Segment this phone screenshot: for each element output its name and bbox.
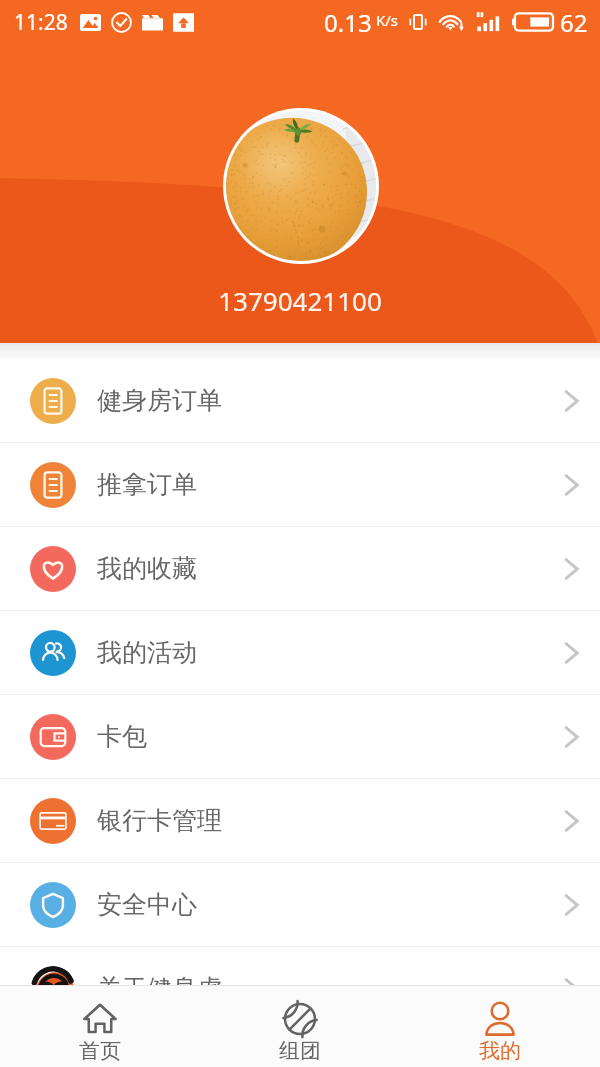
staticText: K/s bbox=[376, 10, 399, 30]
staticText: 62 bbox=[560, 6, 588, 39]
button[interactable]: 健身房订单 bbox=[0, 359, 600, 442]
staticText: 首页 bbox=[79, 1038, 121, 1064]
staticText: 我的活动 bbox=[97, 637, 197, 668]
button[interactable]: 关于健身虎 bbox=[0, 947, 600, 1030]
staticText: 银行卡管理 bbox=[97, 805, 222, 836]
button[interactable]: 安全中心 bbox=[0, 863, 600, 946]
button[interactable]: 银行卡管理 bbox=[0, 779, 600, 862]
button[interactable]: 首页 bbox=[0, 986, 200, 1067]
button[interactable]: 我的收藏 bbox=[0, 527, 600, 610]
staticText: 13790421100 bbox=[218, 283, 382, 318]
staticText: 关于健身虎 bbox=[97, 973, 222, 1004]
staticText: 我的收藏 bbox=[97, 553, 197, 584]
staticText: 健身房订单 bbox=[97, 385, 222, 416]
staticText: 0.13 bbox=[324, 6, 372, 39]
button[interactable]: Profile photo bbox=[223, 108, 379, 264]
button[interactable]: 我的活动 bbox=[0, 611, 600, 694]
button[interactable]: 我的 bbox=[400, 986, 600, 1067]
button[interactable]: 组团 bbox=[200, 986, 400, 1067]
staticText: 卡包 bbox=[97, 721, 147, 752]
button[interactable]: 卡包 bbox=[0, 695, 600, 778]
staticText: 11:28 bbox=[14, 8, 68, 37]
staticText: 推拿订单 bbox=[97, 469, 197, 500]
button[interactable]: 推拿订单 bbox=[0, 443, 600, 526]
staticText: 我的 bbox=[479, 1038, 521, 1064]
staticText: 安全中心 bbox=[97, 889, 197, 920]
staticText: 组团 bbox=[279, 1038, 321, 1064]
